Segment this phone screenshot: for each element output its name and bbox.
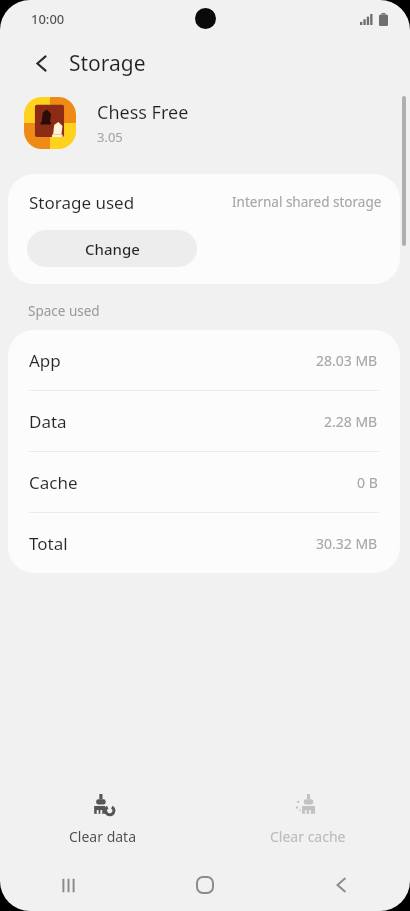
staticText: Clear cache [270, 827, 346, 846]
button[interactable]: Change [27, 230, 197, 267]
staticText: 3.05 [97, 128, 123, 146]
staticText: Chess Free [97, 100, 189, 125]
staticText: App [29, 349, 61, 372]
button[interactable]: Back [273, 859, 410, 911]
button[interactable]: Storage used [8, 174, 400, 230]
button[interactable]: Clear cache [205, 781, 410, 859]
button[interactable]: Recents [0, 859, 136, 911]
staticText: 30.32 MB [316, 534, 378, 553]
button[interactable]: Cache [8, 452, 400, 512]
button[interactable]: Total [8, 513, 400, 573]
button[interactable]: Back [22, 43, 62, 83]
staticText: 0 B [357, 473, 378, 492]
staticText: 10:00 [31, 10, 65, 28]
staticText: Internal shared storage [232, 193, 382, 211]
staticText: Cache [29, 471, 78, 494]
staticText: Space used [28, 302, 100, 320]
button[interactable]: Data [8, 391, 400, 451]
staticText: Storage [69, 49, 146, 78]
staticText: Data [29, 410, 67, 433]
staticText: Clear data [69, 827, 137, 846]
staticText: Total [29, 532, 68, 555]
staticText: Storage used [29, 191, 135, 214]
staticText: 28.03 MB [316, 351, 378, 370]
button[interactable]: Home [136, 859, 273, 911]
staticText: 2.28 MB [324, 412, 378, 431]
staticText: Change [85, 239, 140, 259]
button[interactable]: Clear data [0, 781, 205, 859]
button[interactable]: App [8, 330, 400, 390]
